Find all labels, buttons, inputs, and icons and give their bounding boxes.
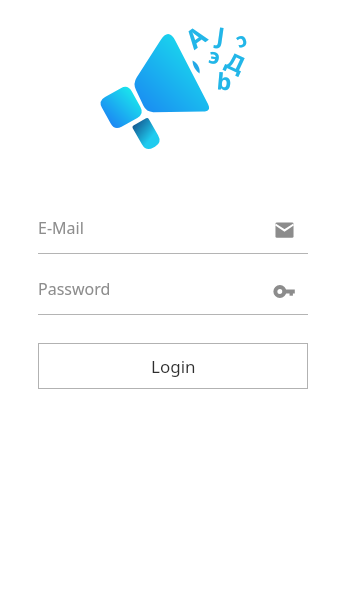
- staticText: Password: [38, 278, 274, 300]
- staticText: Login: [151, 355, 196, 378]
- button[interactable]: E-Mail: [38, 211, 308, 254]
- staticText: E-Mail: [38, 217, 274, 239]
- staticText: J: [215, 19, 227, 50]
- other: Password: [274, 281, 295, 302]
- staticText: A: [178, 17, 213, 56]
- other: Email: [274, 220, 295, 241]
- staticText: b: [216, 64, 233, 97]
- button[interactable]: Login: [38, 343, 308, 389]
- staticText: э: [206, 41, 223, 72]
- button[interactable]: Password: [38, 272, 308, 315]
- staticText: ɔ: [232, 25, 251, 54]
- staticText: Д: [221, 44, 251, 80]
